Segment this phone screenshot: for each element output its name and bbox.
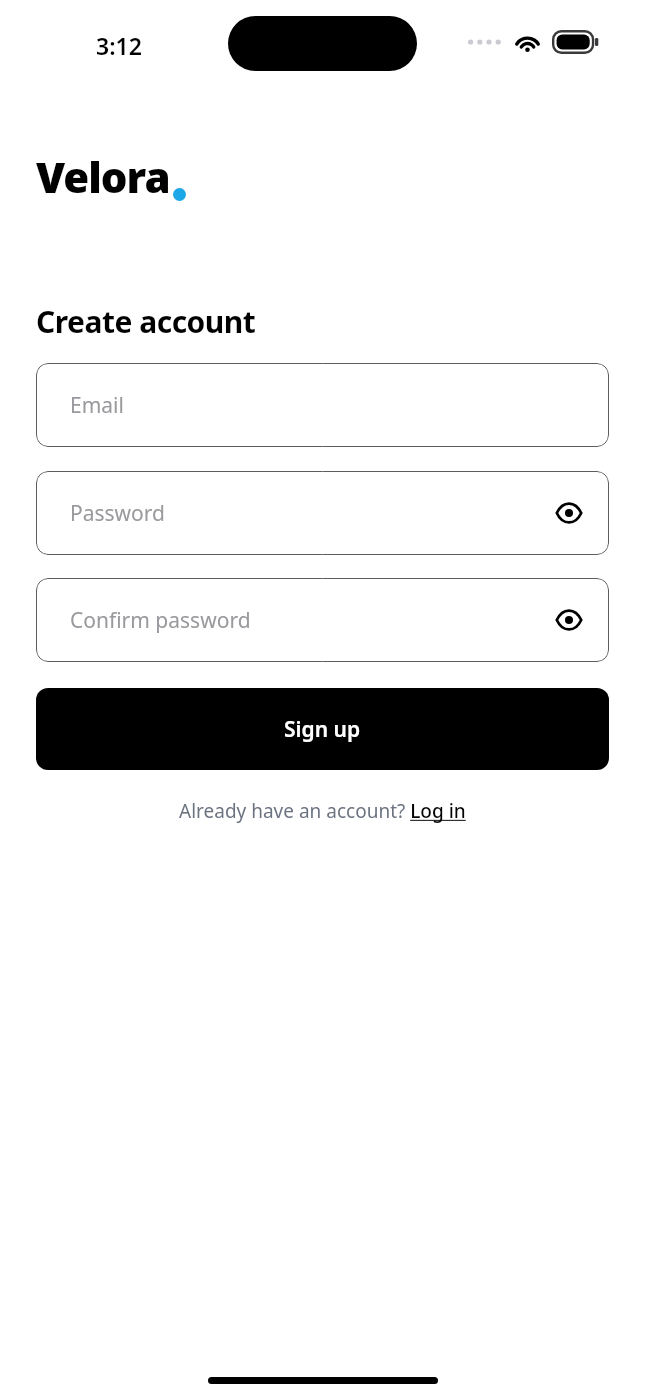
staticText: Email xyxy=(70,391,124,420)
button[interactable]: Confirm password xyxy=(36,578,609,662)
staticText: Velora xyxy=(36,148,170,205)
staticText: Sign up xyxy=(284,715,361,744)
button[interactable]: Sign up xyxy=(36,688,609,770)
button[interactable]: Password xyxy=(36,471,609,555)
staticText: Password xyxy=(70,499,165,528)
button[interactable]: Already have an account? Log in xyxy=(175,795,470,827)
staticText: Create account xyxy=(36,301,256,342)
staticText: Confirm password xyxy=(70,606,251,635)
staticText: Already have an account? Log in xyxy=(179,798,466,824)
staticText: 3:12 xyxy=(96,30,142,61)
button[interactable]: Show password xyxy=(547,598,591,642)
button[interactable]: Email xyxy=(36,363,609,447)
button[interactable]: Show password xyxy=(547,491,591,535)
